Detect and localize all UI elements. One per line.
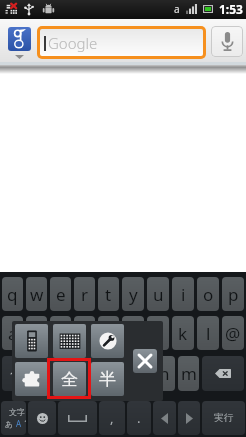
staticText: b: [135, 362, 146, 385]
button[interactable]: Google: [40, 29, 203, 56]
staticText: 実行: [214, 412, 233, 424]
staticText: u: [153, 283, 164, 306]
staticText: p: [228, 283, 239, 306]
staticText: a: [174, 2, 180, 16]
staticText: .: [137, 409, 141, 427]
button[interactable]: q: [2, 277, 23, 311]
staticText: 1:53: [219, 1, 243, 17]
button[interactable]: z: [33, 356, 55, 391]
button[interactable]: Voice search: [211, 26, 243, 57]
staticText: a: [8, 322, 18, 345]
staticText: 半: [99, 369, 116, 390]
staticText: g: [103, 322, 114, 345]
staticText: ,: [110, 409, 114, 427]
staticText: d: [55, 322, 66, 345]
staticText: 1: [24, 418, 26, 429]
staticText: q: [7, 283, 18, 306]
button[interactable]: k: [172, 316, 194, 350]
button[interactable]: r: [74, 277, 95, 311]
staticText: @: [225, 322, 241, 345]
button[interactable]: Search provider: [8, 27, 31, 59]
button[interactable]: d: [50, 316, 71, 350]
button[interactable]: Emoji: [28, 401, 56, 435]
button[interactable]: 全: [53, 362, 86, 396]
button[interactable]: j: [147, 316, 169, 350]
button[interactable]: x: [58, 356, 79, 391]
button[interactable]: Settings: [91, 324, 124, 358]
button[interactable]: g: [98, 316, 119, 350]
button[interactable]: c: [82, 356, 103, 391]
staticText: v: [112, 362, 121, 385]
button[interactable]: w: [26, 277, 47, 311]
button[interactable]: 半: [91, 362, 124, 396]
button[interactable]: @: [222, 316, 244, 350]
staticText: x: [64, 362, 73, 385]
staticText: あ: [5, 419, 14, 429]
staticText: A: [16, 418, 22, 429]
staticText: c: [88, 362, 97, 385]
button[interactable]: Backspace: [202, 356, 244, 391]
button[interactable]: Space: [58, 401, 97, 435]
button[interactable]: u: [147, 277, 169, 311]
button[interactable]: Right: [178, 401, 200, 435]
button[interactable]: t: [98, 277, 119, 311]
staticText: z: [40, 362, 48, 385]
staticText: s: [32, 322, 41, 345]
staticText: w: [30, 283, 44, 306]
staticText: r: [81, 283, 89, 306]
button[interactable]: b: [130, 356, 151, 391]
staticText: Google: [48, 33, 98, 53]
button[interactable]: i: [172, 277, 194, 311]
button[interactable]: Execute: [202, 401, 245, 435]
button[interactable]: l: [197, 316, 219, 350]
button[interactable]: Close: [133, 349, 157, 373]
button[interactable]: f: [74, 316, 95, 350]
button[interactable]: s: [26, 316, 47, 350]
button[interactable]: p: [222, 277, 244, 311]
button[interactable]: Grid layout: [53, 324, 86, 358]
staticText: f: [82, 322, 88, 345]
button[interactable]: n: [154, 356, 175, 391]
button[interactable]: .: [127, 401, 151, 435]
button[interactable]: o: [197, 277, 219, 311]
button[interactable]: a: [2, 316, 23, 350]
button[interactable]: Left: [153, 401, 176, 435]
staticText: i: [181, 283, 186, 306]
button[interactable]: m: [178, 356, 199, 391]
button[interactable]: Plugin: [15, 362, 48, 396]
staticText: 文字: [9, 407, 25, 417]
button[interactable]: h: [122, 316, 144, 350]
button[interactable]: y: [122, 277, 144, 311]
staticText: m: [181, 362, 197, 385]
staticText: y: [129, 283, 138, 306]
button[interactable]: Shift: [2, 356, 30, 391]
button[interactable]: Keypad layout: [15, 324, 48, 358]
button[interactable]: e: [50, 277, 71, 311]
staticText: o: [203, 283, 214, 306]
staticText: l: [206, 322, 211, 345]
staticText: 全: [61, 369, 78, 390]
staticText: n: [159, 362, 170, 385]
button[interactable]: v: [106, 356, 127, 391]
staticText: t: [105, 283, 112, 306]
button[interactable]: Input mode: [1, 401, 26, 435]
staticText: e: [56, 283, 66, 306]
button[interactable]: ,: [99, 401, 125, 435]
staticText: k: [178, 322, 188, 345]
